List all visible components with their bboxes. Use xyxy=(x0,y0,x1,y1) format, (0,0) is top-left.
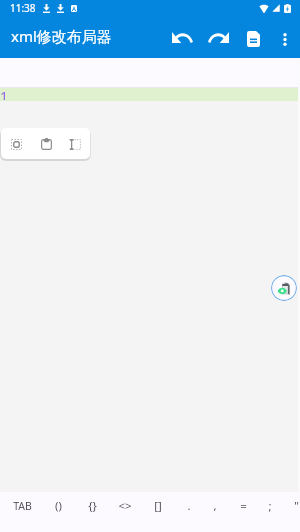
button[interactable]: Clipboard preview xyxy=(271,275,297,301)
staticText: [] xyxy=(154,498,162,514)
staticText: = xyxy=(240,498,247,514)
button[interactable]: Redo xyxy=(200,23,236,55)
button[interactable]: Paste xyxy=(32,130,60,158)
button[interactable]: Undo xyxy=(164,23,200,55)
staticText: " xyxy=(294,498,299,514)
staticText: xml修改布局器 xyxy=(11,26,112,46)
staticText: , xyxy=(213,498,217,514)
button[interactable]: . xyxy=(175,492,203,520)
button[interactable]: [] xyxy=(144,492,172,520)
staticText: ; xyxy=(268,498,272,514)
button[interactable]: More options xyxy=(270,23,300,55)
staticText: TAB xyxy=(13,499,32,513)
button[interactable]: TAB xyxy=(8,492,36,520)
button[interactable]: {} xyxy=(78,492,106,520)
button[interactable]: Select all xyxy=(2,130,30,158)
button[interactable]: () xyxy=(44,492,72,520)
staticText: 11:38 xyxy=(10,1,36,15)
button[interactable]: Autofill xyxy=(61,130,89,158)
button[interactable]: ; xyxy=(256,492,284,520)
button[interactable]: " xyxy=(282,492,300,520)
staticText: () xyxy=(55,498,62,514)
staticText: <> xyxy=(118,498,132,514)
button[interactable]: , xyxy=(201,492,229,520)
button[interactable]: <> xyxy=(111,492,139,520)
button[interactable]: = xyxy=(229,492,257,520)
staticText: . xyxy=(187,498,191,514)
button[interactable]: File xyxy=(236,23,270,55)
staticText: 1 xyxy=(0,87,9,100)
staticText: {} xyxy=(88,498,97,514)
